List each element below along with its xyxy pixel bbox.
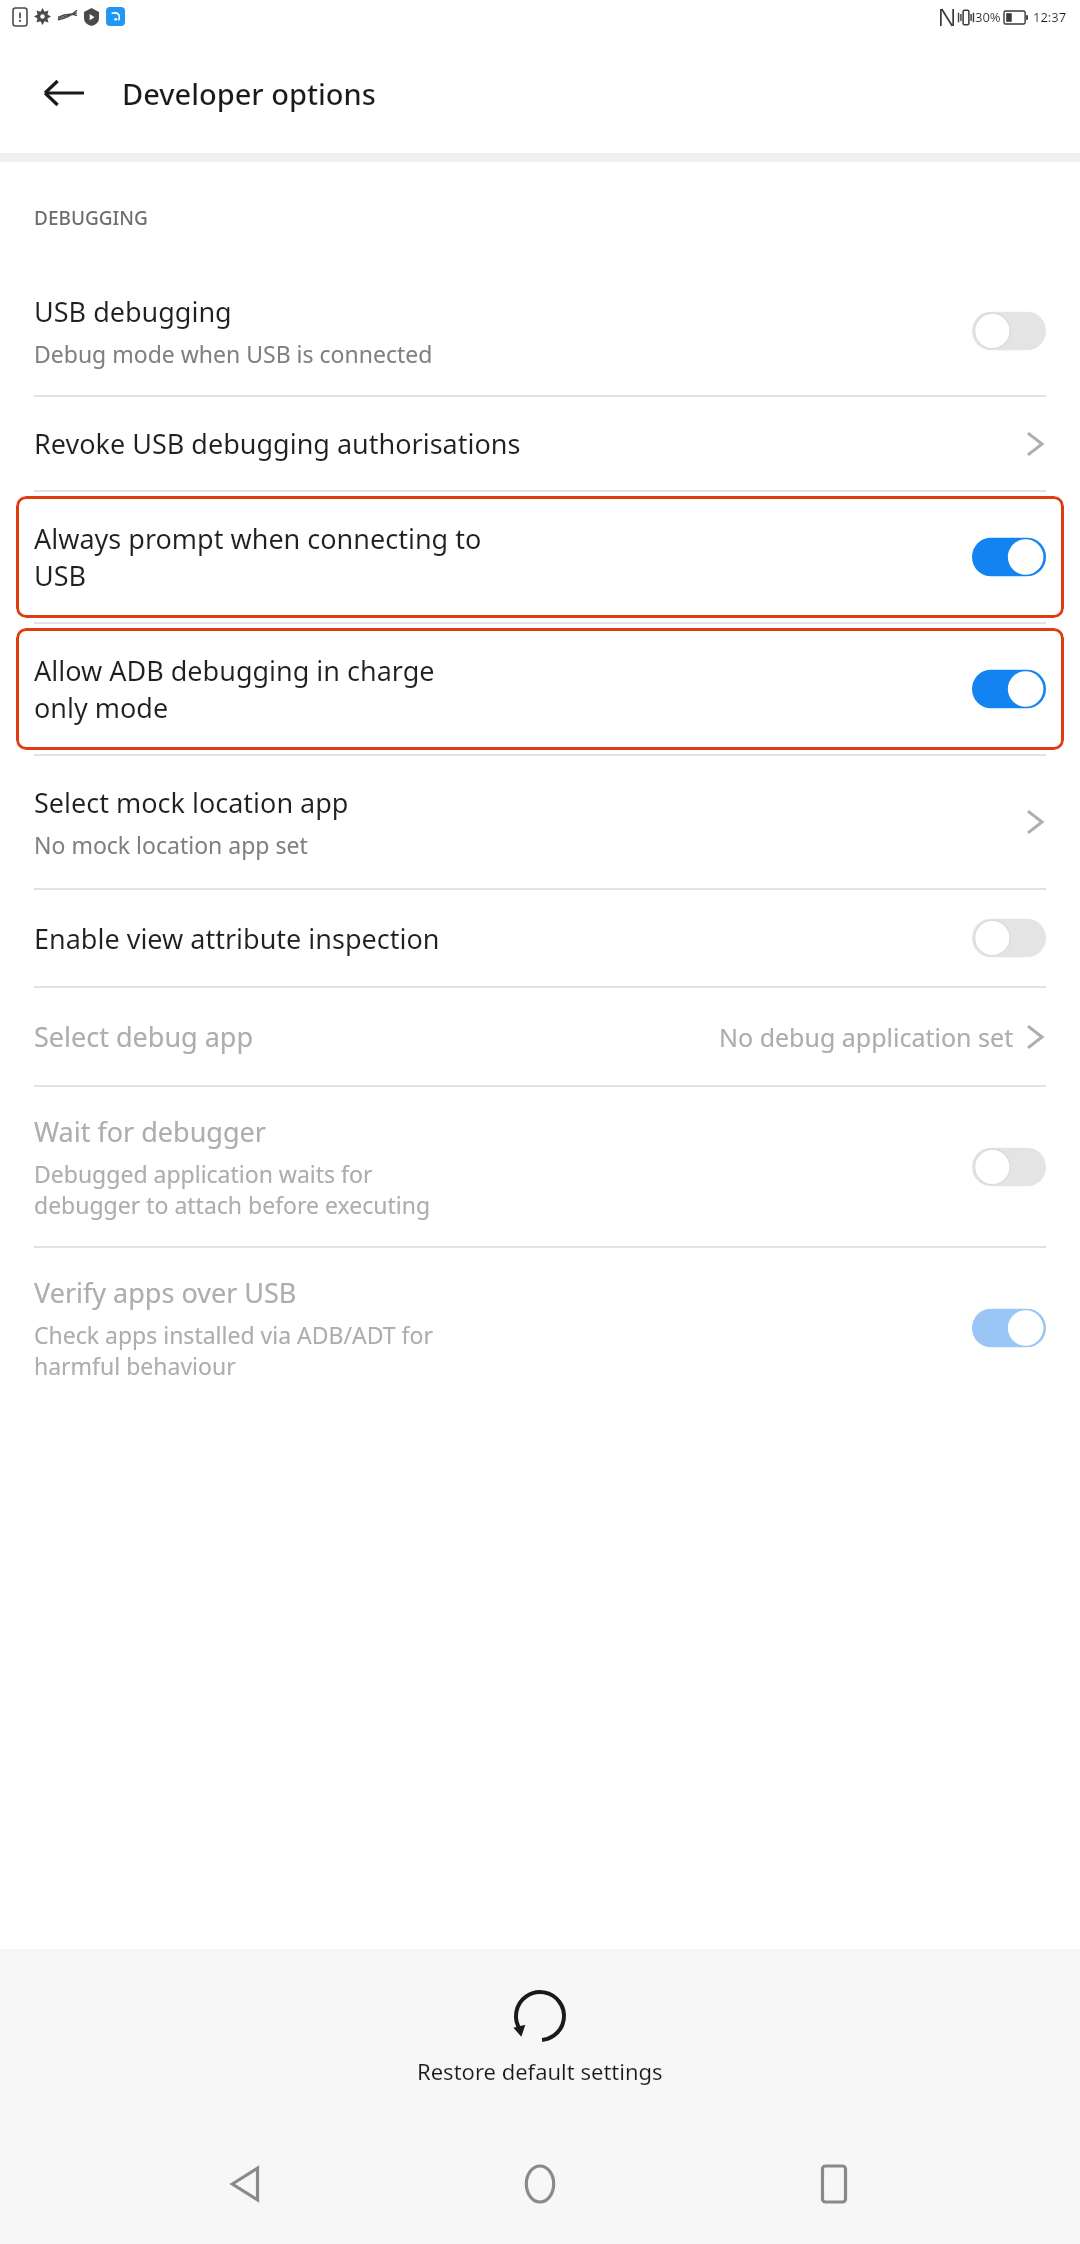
staticText: DEBUGGING bbox=[34, 205, 148, 231]
button[interactable]: Recent apps bbox=[786, 2136, 882, 2232]
button[interactable]: USB debugging bbox=[0, 267, 1080, 395]
button[interactable]: Enable view attribute inspection bbox=[0, 890, 1080, 986]
button[interactable]: Wait for debugger bbox=[0, 1087, 1080, 1246]
staticText: Wait for debugger bbox=[34, 1113, 266, 1150]
button[interactable]: Back bbox=[198, 2136, 294, 2232]
staticText: Select mock location app bbox=[34, 784, 349, 821]
button[interactable]: Home bbox=[492, 2136, 588, 2232]
button[interactable]: Restore default settings bbox=[0, 1949, 1080, 2124]
staticText: Revoke USB debugging authorisations bbox=[34, 425, 521, 462]
staticText: Always prompt when connecting to USB bbox=[34, 520, 482, 594]
button[interactable]: Select debug app bbox=[0, 988, 1080, 1085]
button[interactable]: Verify apps over USB bbox=[0, 1248, 1080, 1407]
staticText: Allow ADB debugging in charge only mode bbox=[34, 652, 435, 726]
button[interactable]: Select mock location app bbox=[0, 756, 1080, 888]
staticText: Debugged application waits for debugger … bbox=[34, 1158, 431, 1220]
staticText: Verify apps over USB bbox=[34, 1274, 297, 1311]
staticText: No mock location app set bbox=[34, 829, 308, 860]
staticText: Select debug app bbox=[34, 1018, 254, 1055]
staticText: Check apps installed via ADB/ADT for har… bbox=[34, 1319, 433, 1381]
staticText: Developer options bbox=[122, 74, 376, 113]
staticText: Debug mode when USB is connected bbox=[34, 338, 433, 369]
staticText: Enable view attribute inspection bbox=[34, 920, 440, 957]
button[interactable]: Always prompt when connecting to USB bbox=[16, 496, 1064, 618]
staticText: 12:37 bbox=[1033, 8, 1067, 26]
button[interactable]: Allow ADB debugging in charge only mode bbox=[16, 628, 1064, 750]
staticText: Restore default settings bbox=[417, 2056, 663, 2086]
staticText: 30% bbox=[975, 8, 1001, 26]
staticText: USB debugging bbox=[34, 293, 232, 330]
staticText: No debug application set bbox=[719, 1020, 1014, 1054]
button[interactable]: Revoke USB debugging authorisations bbox=[0, 397, 1080, 490]
button[interactable]: Back bbox=[32, 61, 96, 125]
